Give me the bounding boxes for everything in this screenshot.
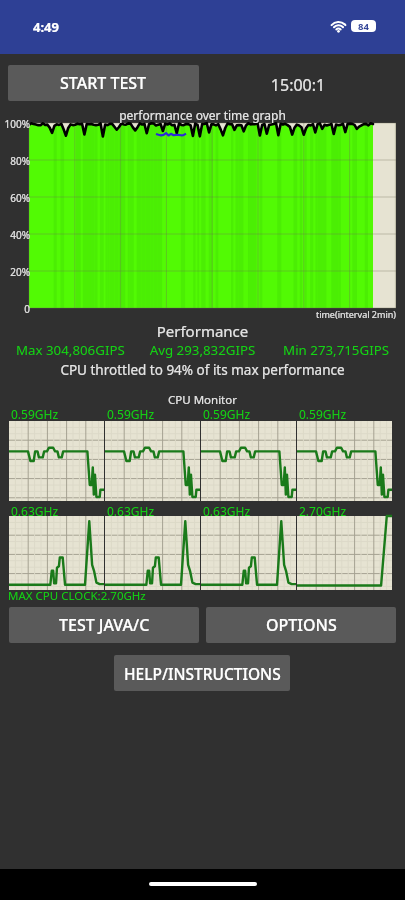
staticText: 0.59GHz bbox=[11, 406, 59, 422]
staticText: 20% bbox=[0, 265, 30, 279]
staticText: 15:00:1 bbox=[199, 74, 397, 96]
staticText: 0.63GHz bbox=[11, 503, 59, 519]
staticText: CPU Monitor bbox=[0, 392, 405, 408]
staticText: 80% bbox=[0, 154, 30, 168]
button[interactable]: OPTIONS bbox=[206, 607, 396, 643]
button[interactable]: START TEST bbox=[8, 65, 199, 101]
staticText: Avg 293,832GIPS bbox=[0, 341, 405, 359]
button[interactable]: TEST JAVA/C bbox=[9, 607, 199, 643]
staticText: time(interval 2min) bbox=[0, 308, 396, 320]
staticText: 4:49 bbox=[33, 18, 59, 36]
staticText: 0.59GHz bbox=[203, 406, 251, 422]
staticText: 100% bbox=[0, 117, 30, 131]
staticText: Max 304,806GIPS bbox=[16, 341, 125, 359]
staticText: Performance bbox=[0, 321, 405, 341]
staticText: performance over time graph bbox=[0, 107, 405, 123]
staticText: 60% bbox=[0, 191, 30, 205]
staticText: TEST JAVA/C bbox=[59, 614, 150, 636]
staticText: CPU throttled to 94% of its max performa… bbox=[0, 361, 405, 379]
staticText: 0 bbox=[0, 302, 30, 316]
staticText: 84 bbox=[358, 20, 369, 32]
staticText: OPTIONS bbox=[266, 614, 337, 636]
staticText: MAX CPU CLOCK:2.70GHz bbox=[8, 588, 146, 604]
staticText: 0.63GHz bbox=[107, 503, 155, 519]
staticText: Min 273,715GIPS bbox=[0, 341, 389, 359]
staticText: 0.59GHz bbox=[107, 406, 155, 422]
button[interactable]: HELP/INSTRUCTIONS bbox=[114, 655, 290, 691]
staticText: 0.59GHz bbox=[299, 406, 347, 422]
staticText: HELP/INSTRUCTIONS bbox=[124, 663, 281, 684]
staticText: 2.70GHz bbox=[299, 503, 347, 519]
staticText: START TEST bbox=[60, 72, 147, 94]
staticText: 40% bbox=[0, 228, 30, 242]
staticText: 0.63GHz bbox=[203, 503, 251, 519]
